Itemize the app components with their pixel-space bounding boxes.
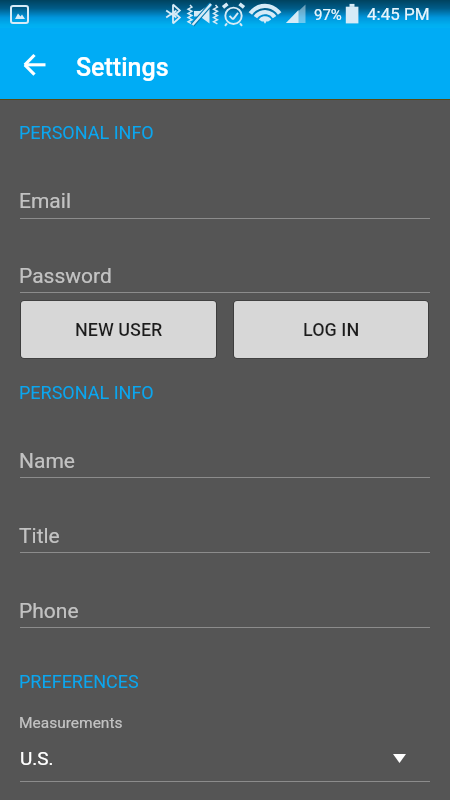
staticText: 97% <box>314 6 342 24</box>
staticText: Phone <box>19 599 79 624</box>
button[interactable]: NEW USER <box>21 301 216 358</box>
staticText: Password <box>19 264 112 289</box>
staticText: Name <box>19 449 75 474</box>
staticText: PERSONAL INFO <box>19 382 154 403</box>
staticText: PERSONAL INFO <box>19 122 154 143</box>
staticText: 4:45 PM <box>367 4 430 24</box>
button[interactable]: U.S. <box>20 747 430 782</box>
staticText: Email <box>19 189 71 214</box>
staticText: Title <box>19 524 60 549</box>
button[interactable]: Back <box>11 40 59 88</box>
staticText: NEW USER <box>75 319 163 340</box>
staticText: LOG IN <box>303 319 360 340</box>
staticText: U.S. <box>20 747 54 769</box>
button[interactable]: LOG IN <box>234 301 428 358</box>
staticText: Settings <box>76 53 169 82</box>
staticText: Measurements <box>19 714 123 732</box>
staticText: PREFERENCES <box>19 671 139 692</box>
